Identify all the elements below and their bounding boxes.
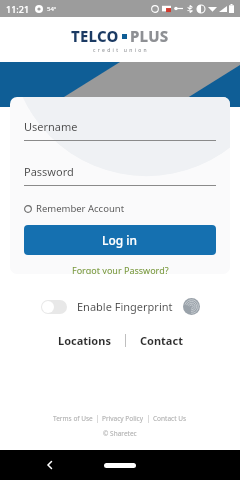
button[interactable]: Terms of Use bbox=[49, 414, 97, 423]
staticText: PLUS bbox=[130, 26, 169, 46]
staticText: c r e d i t u n i o n bbox=[93, 47, 148, 54]
button[interactable]: Remember Account bbox=[24, 202, 216, 215]
staticText: Terms of Use bbox=[53, 414, 93, 423]
button[interactable]: Contact bbox=[134, 331, 189, 350]
staticText: Contact Us bbox=[153, 414, 187, 423]
button[interactable]: Fingerprint bbox=[183, 298, 200, 315]
staticText: 54° bbox=[47, 5, 57, 13]
button[interactable]: Username bbox=[24, 119, 216, 141]
staticText: © Sharetec bbox=[103, 429, 137, 438]
button[interactable]: Contact Us bbox=[149, 414, 191, 423]
staticText: Password bbox=[24, 164, 74, 179]
staticText: Locations bbox=[58, 333, 111, 348]
staticText: Enable Fingerprint bbox=[77, 299, 173, 314]
staticText: Remember Account bbox=[36, 202, 125, 215]
staticText: Log in bbox=[102, 232, 138, 248]
button[interactable]: Password bbox=[24, 164, 216, 186]
staticText: Forgot your Password? bbox=[72, 264, 169, 274]
button[interactable]: Back bbox=[40, 455, 60, 475]
staticText: TELCO bbox=[71, 26, 119, 46]
button[interactable]: Log in bbox=[24, 225, 216, 255]
button[interactable]: Privacy Policy bbox=[98, 414, 148, 423]
staticText: Username bbox=[24, 119, 78, 134]
button[interactable]: Forgot your Password? bbox=[24, 264, 216, 274]
staticText: 11:21 bbox=[6, 3, 30, 15]
staticText: Privacy Policy bbox=[102, 414, 144, 423]
button[interactable]: Home bbox=[104, 463, 136, 468]
staticText: Contact bbox=[140, 333, 183, 348]
button[interactable]: Enable Fingerprint toggle bbox=[41, 300, 67, 314]
button[interactable]: Locations bbox=[52, 331, 117, 350]
